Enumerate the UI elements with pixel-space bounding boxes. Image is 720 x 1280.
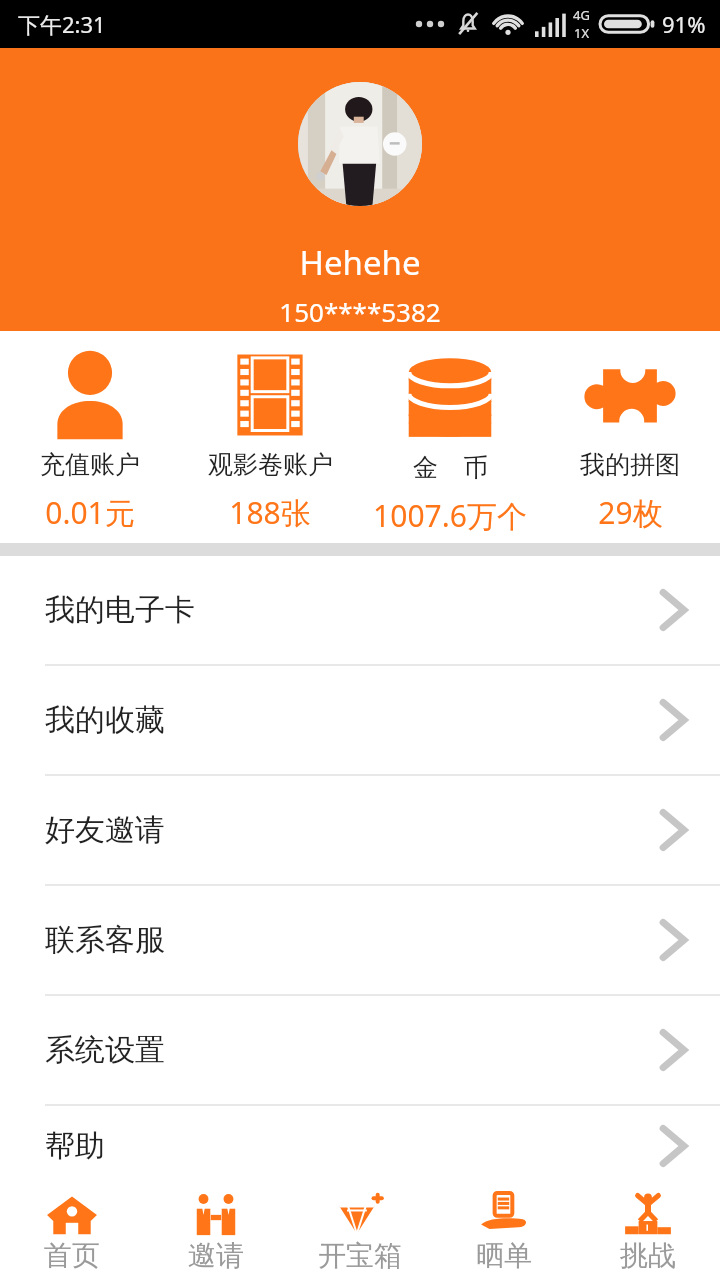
staticText: 91% [662, 9, 706, 39]
staticText: 系统设置 [45, 1031, 165, 1069]
button[interactable]: 首页 [0, 1186, 144, 1273]
button[interactable]: 邀请 [144, 1186, 288, 1273]
staticText: 188张 [229, 492, 311, 533]
button[interactable]: 好友邀请 [0, 776, 720, 884]
staticText: 下午2:31 [18, 9, 106, 39]
staticText: 1007.6万个 [373, 495, 527, 536]
staticText: 充值账户 [40, 449, 140, 480]
button[interactable]: 观影卷账户 [180, 331, 360, 533]
button[interactable]: 晒单 [432, 1186, 576, 1273]
staticText: 开宝箱 [318, 1238, 402, 1273]
button[interactable]: 我的收藏 [0, 666, 720, 774]
staticText: 我的收藏 [45, 701, 165, 739]
button[interactable]: 帮助 [0, 1106, 720, 1186]
staticText: 金 币 [413, 449, 488, 483]
staticText: 29枚 [598, 492, 663, 533]
staticText: 我的拼图 [580, 449, 680, 480]
staticText: 0.01元 [45, 492, 135, 533]
staticText: 帮助 [45, 1127, 105, 1165]
staticText: 首页 [44, 1238, 100, 1273]
button[interactable]: 开宝箱 [288, 1186, 432, 1273]
staticText: 好友邀请 [45, 811, 165, 849]
staticText: 我的电子卡 [45, 591, 195, 629]
button[interactable]: 我的拼图 [540, 331, 720, 533]
staticText: 晒单 [476, 1238, 532, 1273]
staticText: Hehehe [299, 240, 421, 285]
staticText: 联系客服 [45, 921, 165, 959]
button[interactable]: 我的电子卡 [0, 556, 720, 664]
button[interactable]: 系统设置 [0, 996, 720, 1104]
staticText: 1X [574, 24, 590, 42]
staticText: 挑战 [620, 1238, 676, 1273]
staticText: 邀请 [188, 1238, 244, 1273]
staticText: 观影卷账户 [208, 449, 333, 480]
button[interactable]: 联系客服 [0, 886, 720, 994]
button[interactable]: Profile photo [298, 82, 422, 206]
staticText: 4G [573, 6, 590, 24]
button[interactable]: 金 币 [360, 331, 540, 536]
button[interactable]: 挑战 [576, 1186, 720, 1273]
button[interactable]: 充值账户 [0, 331, 180, 533]
staticText: 150****5382 [279, 294, 441, 329]
